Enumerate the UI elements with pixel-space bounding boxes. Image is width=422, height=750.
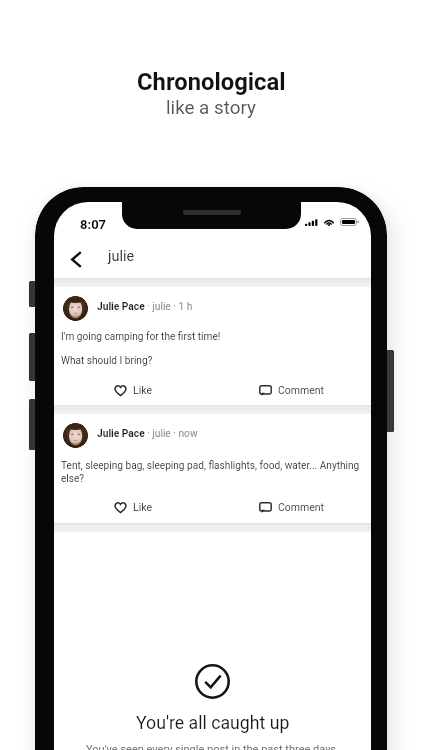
button[interactable]: Like xyxy=(54,498,212,516)
staticText: like a story xyxy=(166,97,256,119)
staticText: julie xyxy=(108,248,135,265)
staticText: Like xyxy=(133,384,152,396)
button[interactable]: Comment xyxy=(212,498,371,516)
staticText: Julie Pace · julie · 1 h xyxy=(97,301,193,313)
staticText: Comment xyxy=(278,501,325,513)
button[interactable]: Back xyxy=(57,240,95,278)
staticText: Julie Pace · julie · now xyxy=(97,428,198,440)
staticText: You've seen every single post in the pas… xyxy=(86,743,339,750)
staticText: Chronological xyxy=(137,68,286,96)
button[interactable]: Comment xyxy=(212,381,371,399)
staticText: Comment xyxy=(278,384,325,396)
staticText: What should I bring? xyxy=(61,355,362,367)
button[interactable]: Like xyxy=(54,381,212,399)
staticText: You're all caught up xyxy=(136,713,290,734)
staticText: Tent, sleeping bag, sleeping pad, flashl… xyxy=(61,460,362,484)
staticText: I'm going camping for the first time! xyxy=(61,331,362,343)
staticText: 8:07 xyxy=(80,217,107,232)
staticText: Like xyxy=(133,501,152,513)
